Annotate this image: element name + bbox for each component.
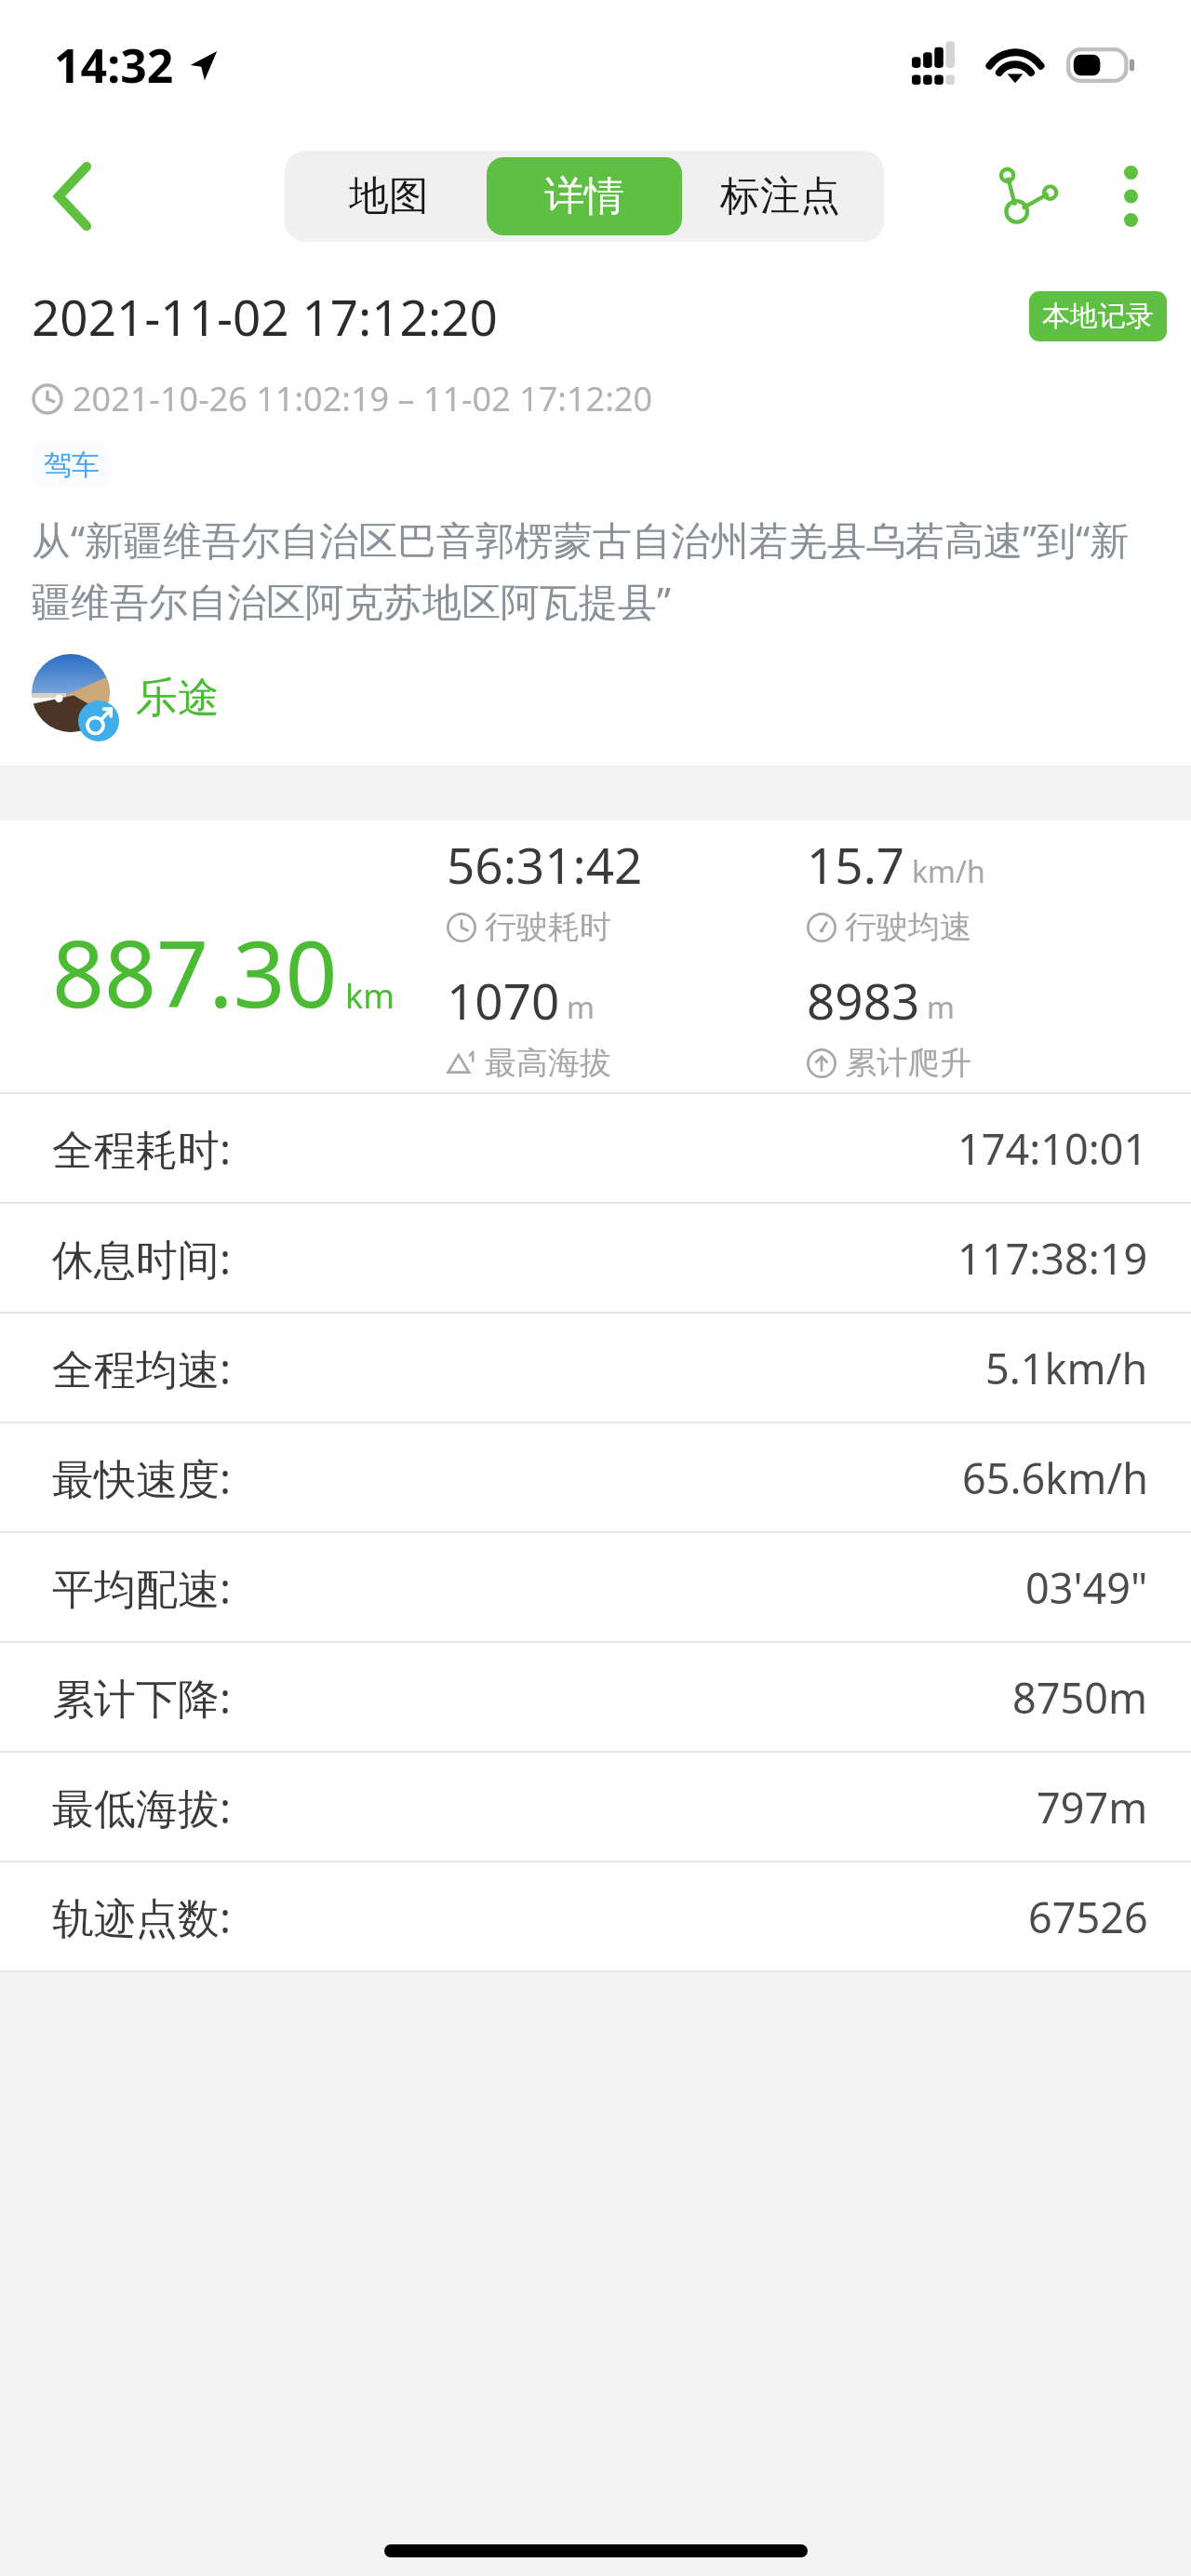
button[interactable]: 乐途 [32, 654, 220, 741]
button[interactable]: Back [22, 145, 125, 247]
button[interactable]: More options [1089, 154, 1172, 238]
staticText: 65.6km/h [962, 1449, 1148, 1506]
staticText: 休息时间: [52, 1230, 232, 1287]
button[interactable]: 累计下降: [0, 1643, 1191, 1751]
staticText: 最高海拔 [485, 1043, 611, 1083]
staticText: 轨迹点数: [52, 1889, 232, 1945]
staticText: 最快速度: [52, 1449, 232, 1506]
staticText: 累计下降: [52, 1669, 232, 1726]
staticText: km [345, 973, 395, 1019]
staticText: 驾车 [44, 447, 100, 483]
staticText: 全程耗时: [52, 1120, 232, 1177]
staticText: 平均配速: [52, 1559, 232, 1616]
button[interactable]: 最低海拔: [0, 1753, 1191, 1861]
staticText: 地图 [349, 171, 429, 221]
staticText: 8983 [807, 967, 920, 1034]
staticText: 乐途 [136, 672, 220, 725]
staticText: 117:38:19 [957, 1230, 1148, 1287]
button[interactable]: 详情 [487, 157, 682, 235]
staticText: 详情 [544, 171, 624, 221]
button[interactable]: 全程均速: [0, 1314, 1191, 1421]
staticText: 14:32 [54, 33, 174, 97]
staticText: 本地记录 [1042, 299, 1154, 334]
staticText: 全程均速: [52, 1340, 232, 1396]
button[interactable]: 全程耗时: [0, 1094, 1191, 1202]
button[interactable]: 本地记录 [1029, 291, 1167, 341]
staticText: 2021-10-26 11:02:19 – 11-02 17:12:20 [73, 376, 653, 421]
staticText: m [567, 987, 595, 1028]
staticText: 67526 [1028, 1889, 1148, 1945]
staticText: 15.7 [807, 831, 905, 898]
button[interactable]: 轨迹点数: [0, 1862, 1191, 1970]
staticText: 2021-11-02 17:12:20 [32, 283, 1029, 350]
staticText: km/h [912, 851, 985, 892]
staticText: 行驶耗时 [485, 907, 611, 947]
staticText: 从“新疆维吾尔自治区巴音郭楞蒙古自治州若羌县乌若高速”到“新疆维吾尔自治区阿克苏… [32, 513, 1159, 628]
button[interactable]: 平均配速: [0, 1533, 1191, 1641]
staticText: 5.1km/h [985, 1340, 1148, 1396]
button[interactable]: Share [984, 152, 1074, 241]
staticText: 797m [1037, 1779, 1148, 1835]
staticText: 累计爬升 [845, 1043, 971, 1083]
staticText: 行驶均速 [845, 907, 971, 947]
button[interactable]: 休息时间: [0, 1204, 1191, 1312]
button[interactable]: 地图 [291, 157, 487, 235]
button[interactable]: 标注点 [682, 157, 877, 235]
staticText: 56:31:42 [447, 831, 643, 898]
staticText: 8750m [1012, 1669, 1148, 1726]
staticText: 最低海拔: [52, 1779, 232, 1835]
staticText: 1070 [447, 967, 560, 1034]
staticText: 174:10:01 [957, 1120, 1148, 1177]
staticText: 887.30 [52, 910, 338, 1034]
staticText: 03'49" [1025, 1559, 1148, 1616]
button[interactable]: 最快速度: [0, 1423, 1191, 1531]
staticText: 标注点 [720, 171, 840, 221]
staticText: m [927, 987, 955, 1028]
